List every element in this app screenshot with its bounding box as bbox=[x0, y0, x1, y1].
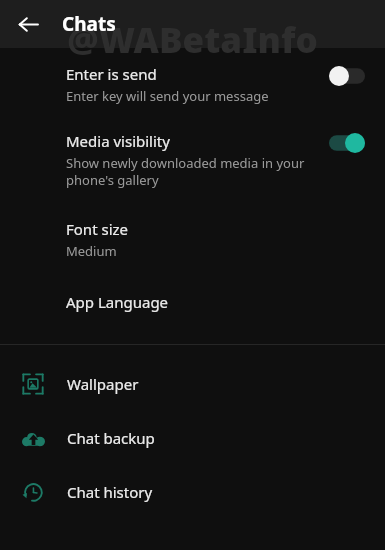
staticText: Enter is send bbox=[66, 64, 157, 84]
staticText: Font size bbox=[66, 219, 129, 239]
button[interactable]: Back bbox=[8, 4, 48, 44]
button[interactable]: Font size bbox=[0, 203, 385, 274]
other: Chat history bbox=[20, 479, 46, 505]
button[interactable]: Enter is send bbox=[0, 48, 385, 119]
button[interactable]: Chat backup bbox=[0, 411, 385, 465]
other: Chat backup bbox=[20, 425, 46, 451]
staticText: Medium bbox=[66, 242, 117, 260]
staticText: Chats bbox=[62, 11, 116, 37]
staticText: Show newly downloaded media in your phon… bbox=[66, 154, 305, 189]
staticText: App Language bbox=[66, 292, 169, 312]
staticText: @WABetaInfo bbox=[0, 16, 385, 62]
staticText: Wallpaper bbox=[67, 374, 139, 394]
button[interactable]: App Language bbox=[0, 274, 385, 330]
button[interactable]: Wallpaper bbox=[0, 357, 385, 411]
other: Wallpaper bbox=[20, 371, 46, 397]
staticText: Media visibility bbox=[66, 131, 170, 151]
staticText: Enter key will send your message bbox=[66, 87, 269, 105]
button[interactable]: Chat history bbox=[0, 465, 385, 519]
button[interactable]: Media visibility bbox=[0, 119, 385, 203]
staticText: Chat backup bbox=[67, 428, 155, 448]
staticText: Chat history bbox=[67, 482, 153, 502]
